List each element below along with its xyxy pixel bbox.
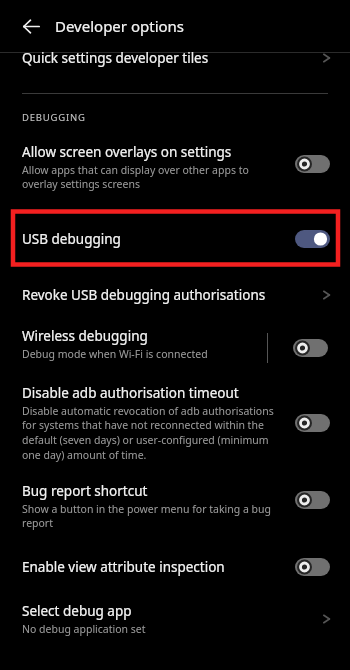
- staticText: Disable adb authorisation timeout: [22, 384, 239, 402]
- staticText: Disable automatic revocation of adb auth…: [22, 404, 278, 462]
- staticText: DEBUGGING: [22, 111, 86, 124]
- staticText: No debug application set: [22, 622, 146, 636]
- button[interactable]: Wireless debugging: [22, 327, 256, 361]
- staticText: Developer options: [55, 16, 185, 36]
- staticText: Quick settings developer tiles: [22, 49, 209, 67]
- button[interactable]: Toggle, off: [293, 339, 328, 357]
- staticText: Select debug app: [22, 602, 132, 620]
- button[interactable]: USB debugging: [0, 209, 350, 269]
- staticText: Bug report shortcut: [22, 482, 148, 500]
- button[interactable]: Toggle, off: [295, 155, 330, 173]
- button[interactable]: Disable adb authorisation timeout: [0, 384, 350, 462]
- button[interactable]: Toggle, off: [295, 491, 330, 509]
- button[interactable]: Allow screen overlays on settings: [0, 143, 350, 191]
- button[interactable]: Toggle, off: [295, 558, 330, 576]
- button[interactable]: Revoke USB debugging authorisations: [0, 278, 350, 312]
- staticText: Allow apps that can display over other a…: [22, 163, 275, 191]
- staticText: Allow screen overlays on settings: [22, 143, 232, 161]
- button[interactable]: Quick settings developer tiles: [0, 53, 350, 93]
- button[interactable]: Enable view attribute inspection: [0, 554, 350, 580]
- staticText: Show a button in the power menu for taki…: [22, 502, 275, 530]
- staticText: Wireless debugging: [22, 327, 148, 345]
- staticText: Revoke USB debugging authorisations: [22, 286, 266, 304]
- button[interactable]: Toggle, off: [295, 414, 330, 432]
- button[interactable]: Select debug app: [0, 602, 350, 636]
- button[interactable]: Back: [13, 8, 49, 44]
- staticText: USB debugging: [22, 230, 121, 248]
- button[interactable]: Bug report shortcut: [0, 482, 350, 530]
- staticText: Debug mode when Wi-Fi is connected: [22, 347, 208, 361]
- button[interactable]: Toggle, on: [295, 230, 330, 248]
- staticText: Enable view attribute inspection: [22, 558, 225, 576]
